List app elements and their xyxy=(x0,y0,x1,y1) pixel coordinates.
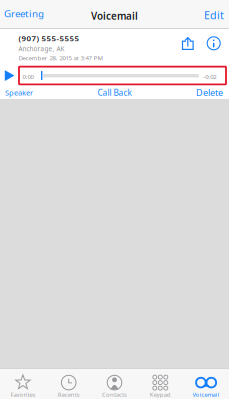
button[interactable]: Voicemail xyxy=(183,368,229,399)
staticText: Edit xyxy=(204,8,224,22)
button[interactable]: Play xyxy=(4,70,15,81)
staticText: Greeting xyxy=(4,7,44,20)
button[interactable]: Greeting xyxy=(0,0,56,26)
button[interactable]: Call Back xyxy=(84,87,144,99)
button[interactable]: Keypad xyxy=(137,368,183,399)
staticText: Recents xyxy=(58,391,80,398)
staticText: Speaker xyxy=(5,88,33,97)
button[interactable]: Details xyxy=(207,37,220,50)
staticText: -0:02 xyxy=(203,73,216,81)
button[interactable]: Speaker xyxy=(0,87,51,99)
staticText: Contacts xyxy=(102,391,127,398)
staticText: December 28, 2015 at 3:47 PM xyxy=(19,54,104,62)
staticText: Voicemail xyxy=(91,9,138,22)
staticText: Voicemail xyxy=(193,391,220,398)
button[interactable]: Favorites xyxy=(0,368,46,399)
button[interactable]: Contacts xyxy=(92,368,137,399)
staticText: 0:00 xyxy=(23,73,34,81)
button[interactable]: Delete xyxy=(177,87,229,99)
button[interactable]: Share xyxy=(182,37,194,50)
button[interactable]: Edit xyxy=(190,2,228,28)
staticText: (907) 555-5555 xyxy=(19,33,80,43)
staticText: Anchorage, AK xyxy=(19,44,65,53)
button[interactable]: Recents xyxy=(46,368,92,399)
staticText: Delete xyxy=(196,87,223,99)
staticText: Keypad xyxy=(150,391,171,398)
staticText: Favorites xyxy=(10,391,35,398)
staticText: Call Back xyxy=(97,87,131,98)
